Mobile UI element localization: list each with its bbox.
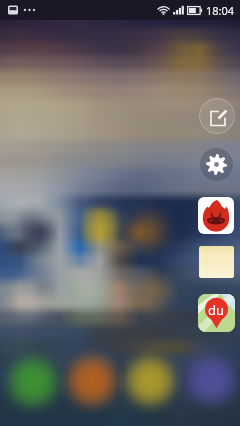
button[interactable]: Settings: [200, 148, 233, 181]
staticText: 18:04: [206, 3, 235, 18]
button[interactable]: Notes: [199, 246, 234, 278]
button[interactable]: Edit: [199, 98, 235, 134]
button[interactable]: Baidu Maps: [198, 294, 235, 332]
button[interactable]: AnTuTu Benchmark: [198, 197, 234, 234]
staticText: du: [208, 301, 225, 319]
